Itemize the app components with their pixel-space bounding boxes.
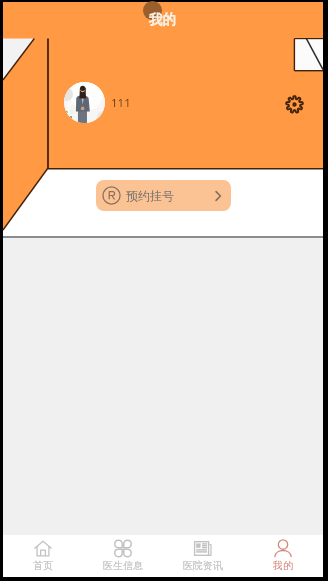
button[interactable]: 首页 — [3, 535, 83, 577]
staticText: 我的 — [273, 559, 293, 572]
staticText: 111 — [111, 95, 131, 111]
button[interactable]: 医院资讯 — [163, 535, 243, 577]
staticText: 我的 — [149, 11, 176, 28]
button[interactable]: 我的 — [243, 535, 323, 577]
button[interactable]: Settings — [285, 95, 304, 114]
staticText: 医生信息 — [103, 559, 143, 572]
button[interactable]: 预约挂号 — [96, 180, 231, 211]
staticText: 预约挂号 — [126, 188, 174, 203]
button[interactable]: 医生信息 — [83, 535, 163, 577]
staticText: 医院资讯 — [183, 559, 223, 572]
staticText: 首页 — [33, 559, 53, 572]
